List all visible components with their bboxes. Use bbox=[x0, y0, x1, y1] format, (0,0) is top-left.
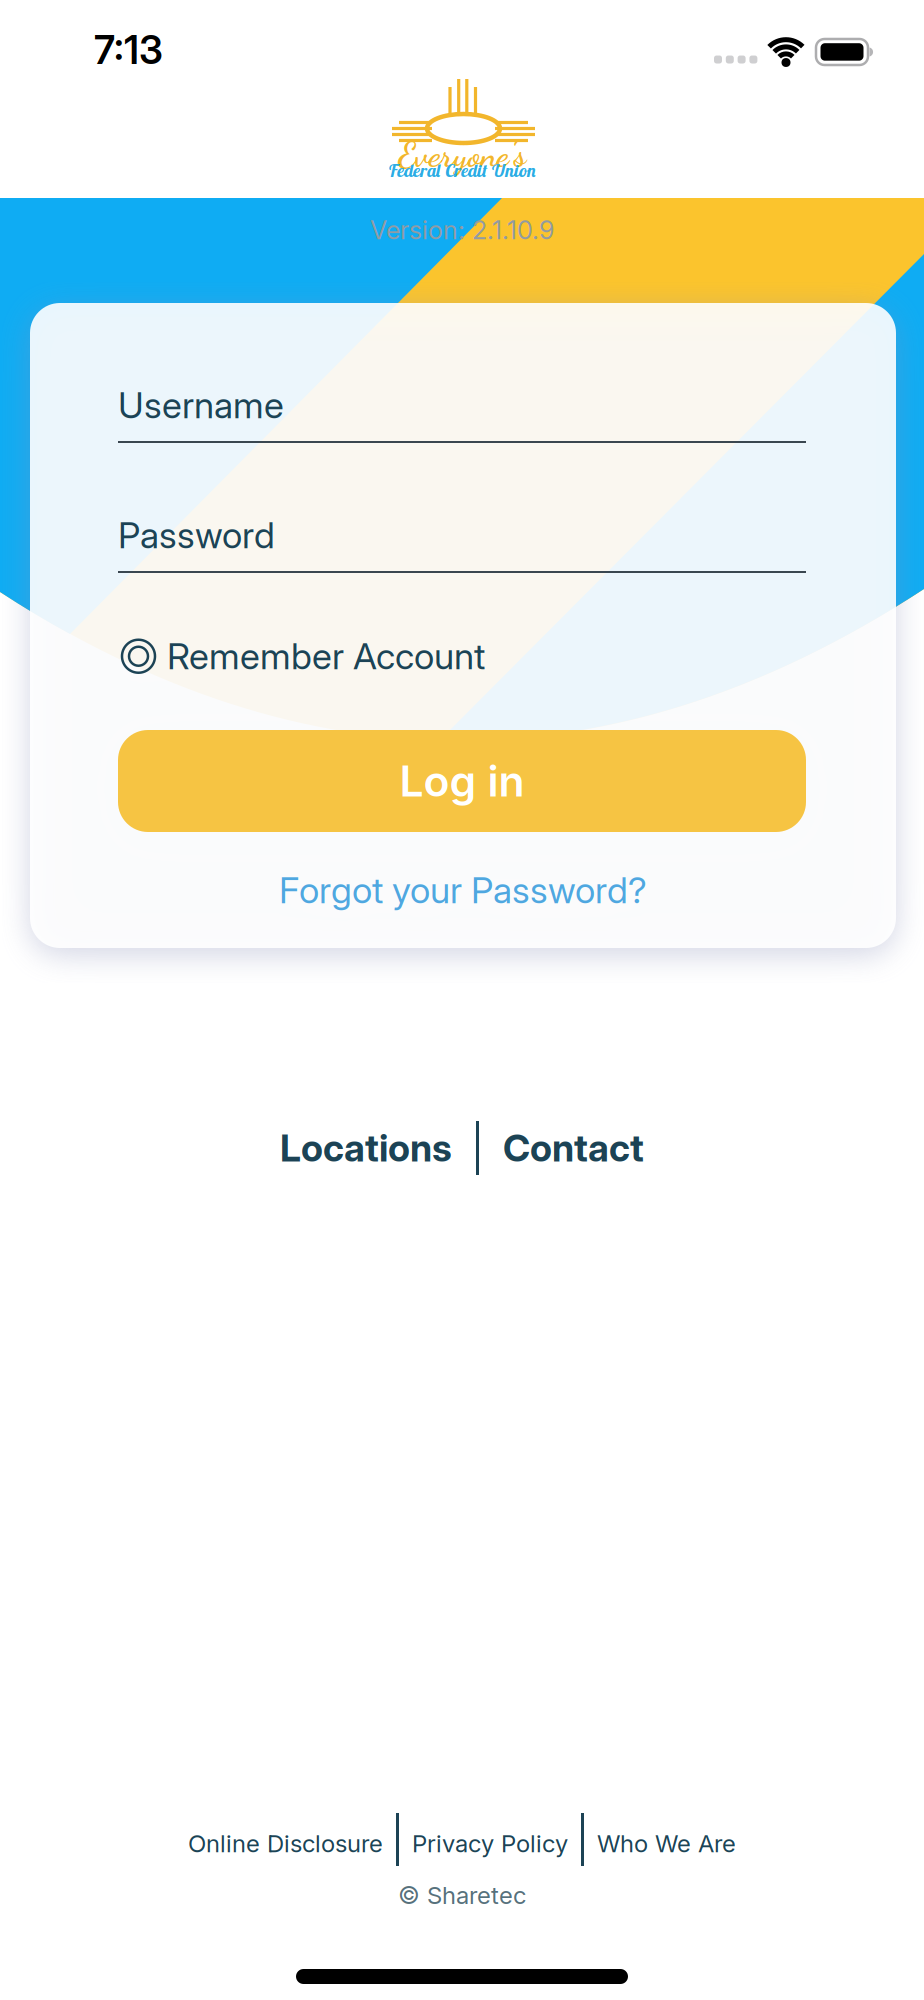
button[interactable]: Who We Are bbox=[597, 1829, 736, 1858]
button[interactable]: Remember Account bbox=[122, 635, 485, 677]
staticText: Log in bbox=[399, 756, 524, 806]
staticText: Online Disclosure bbox=[188, 1829, 383, 1858]
staticText: Username bbox=[118, 384, 284, 426]
staticText: 7:13 bbox=[94, 27, 163, 73]
staticText: Who We Are bbox=[597, 1829, 736, 1858]
button[interactable]: Online Disclosure bbox=[188, 1829, 383, 1858]
staticText: © Sharetec bbox=[398, 1881, 526, 1909]
staticText: Everyone's bbox=[398, 134, 526, 176]
staticText: Forgot your Password? bbox=[279, 869, 647, 911]
staticText: Password bbox=[118, 514, 275, 556]
staticText: Federal Credit Union bbox=[388, 159, 536, 181]
button[interactable]: Contact bbox=[503, 1126, 644, 1170]
staticText: Remember Account bbox=[167, 635, 485, 677]
button[interactable]: Privacy Policy bbox=[412, 1829, 568, 1858]
staticText: Version: 2.1.10.9 bbox=[370, 215, 554, 245]
staticText: Privacy Policy bbox=[412, 1829, 568, 1858]
staticText: Locations bbox=[280, 1126, 452, 1170]
button[interactable]: Forgot your Password? bbox=[30, 869, 896, 911]
button[interactable]: Locations bbox=[280, 1126, 452, 1170]
button[interactable]: Log in bbox=[118, 730, 806, 832]
staticText: Contact bbox=[503, 1126, 644, 1170]
